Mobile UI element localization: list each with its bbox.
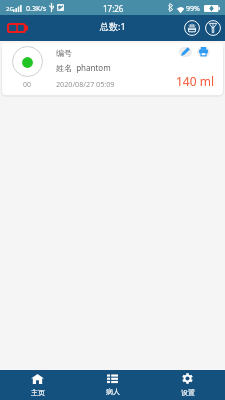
button[interactable]: Device battery — [4, 20, 30, 36]
staticText: 140 ml — [176, 73, 215, 89]
staticText: 2020/08/27 05:09 — [56, 79, 115, 89]
staticText: 病人 — [106, 387, 120, 396]
button[interactable]: Print record — [196, 45, 210, 58]
staticText: 0.3K/s — [26, 4, 47, 14]
button[interactable]: Connection — [203, 18, 223, 38]
staticText: 17:26 — [103, 3, 124, 14]
staticText: 设置 — [181, 388, 195, 397]
button[interactable]: 主页 — [0, 370, 75, 400]
staticText: 99% — [186, 4, 200, 14]
button[interactable]: 病人 — [75, 370, 150, 400]
button[interactable]: 00 — [2, 43, 223, 95]
staticText: 总数:1 — [100, 20, 126, 32]
button[interactable]: Edit record — [178, 45, 192, 58]
button[interactable]: 设置 — [150, 370, 225, 400]
staticText: 姓名 phantom — [56, 62, 111, 73]
staticText: 主页 — [31, 388, 45, 397]
button[interactable]: Scale — [182, 18, 202, 38]
staticText: 00 — [23, 80, 32, 90]
staticText: 编号 — [56, 48, 72, 58]
staticText: 2G — [6, 5, 14, 13]
